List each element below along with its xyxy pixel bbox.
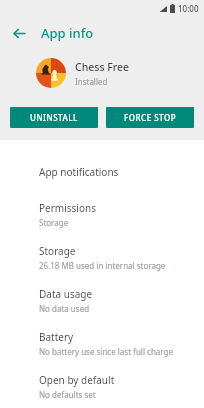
staticText: 26.18 MB used in internal storage bbox=[39, 260, 166, 271]
button[interactable]: Chess Free bbox=[0, 50, 204, 96]
staticText: Open by default bbox=[39, 373, 115, 387]
button[interactable]: Permissions bbox=[0, 193, 204, 236]
staticText: App info bbox=[41, 24, 94, 42]
staticText: App notifications bbox=[39, 165, 119, 179]
staticText: No data used bbox=[39, 303, 90, 314]
staticText: Storage bbox=[39, 244, 76, 258]
button[interactable]: Open by default bbox=[0, 365, 204, 408]
staticText: Battery bbox=[39, 330, 74, 344]
staticText: Storage bbox=[39, 217, 69, 228]
button[interactable]: Battery bbox=[0, 322, 204, 365]
staticText: 10:00 bbox=[178, 3, 199, 14]
staticText: No defaults set bbox=[39, 389, 96, 400]
staticText: Permissions bbox=[39, 201, 96, 215]
button[interactable]: App notifications bbox=[0, 150, 204, 193]
button[interactable]: FORCE STOP bbox=[106, 107, 194, 128]
button[interactable]: UNINSTALL bbox=[10, 107, 98, 128]
staticText: No battery use since last full charge bbox=[39, 346, 173, 357]
button[interactable]: Data usage bbox=[0, 279, 204, 322]
button[interactable]: Storage bbox=[0, 236, 204, 279]
staticText: FORCE STOP bbox=[124, 112, 177, 123]
staticText: Installed bbox=[75, 76, 108, 87]
staticText: UNINSTALL bbox=[30, 112, 78, 123]
staticText: Data usage bbox=[39, 287, 93, 301]
staticText: Chess Free bbox=[75, 60, 130, 74]
button[interactable]: Back bbox=[6, 20, 32, 46]
